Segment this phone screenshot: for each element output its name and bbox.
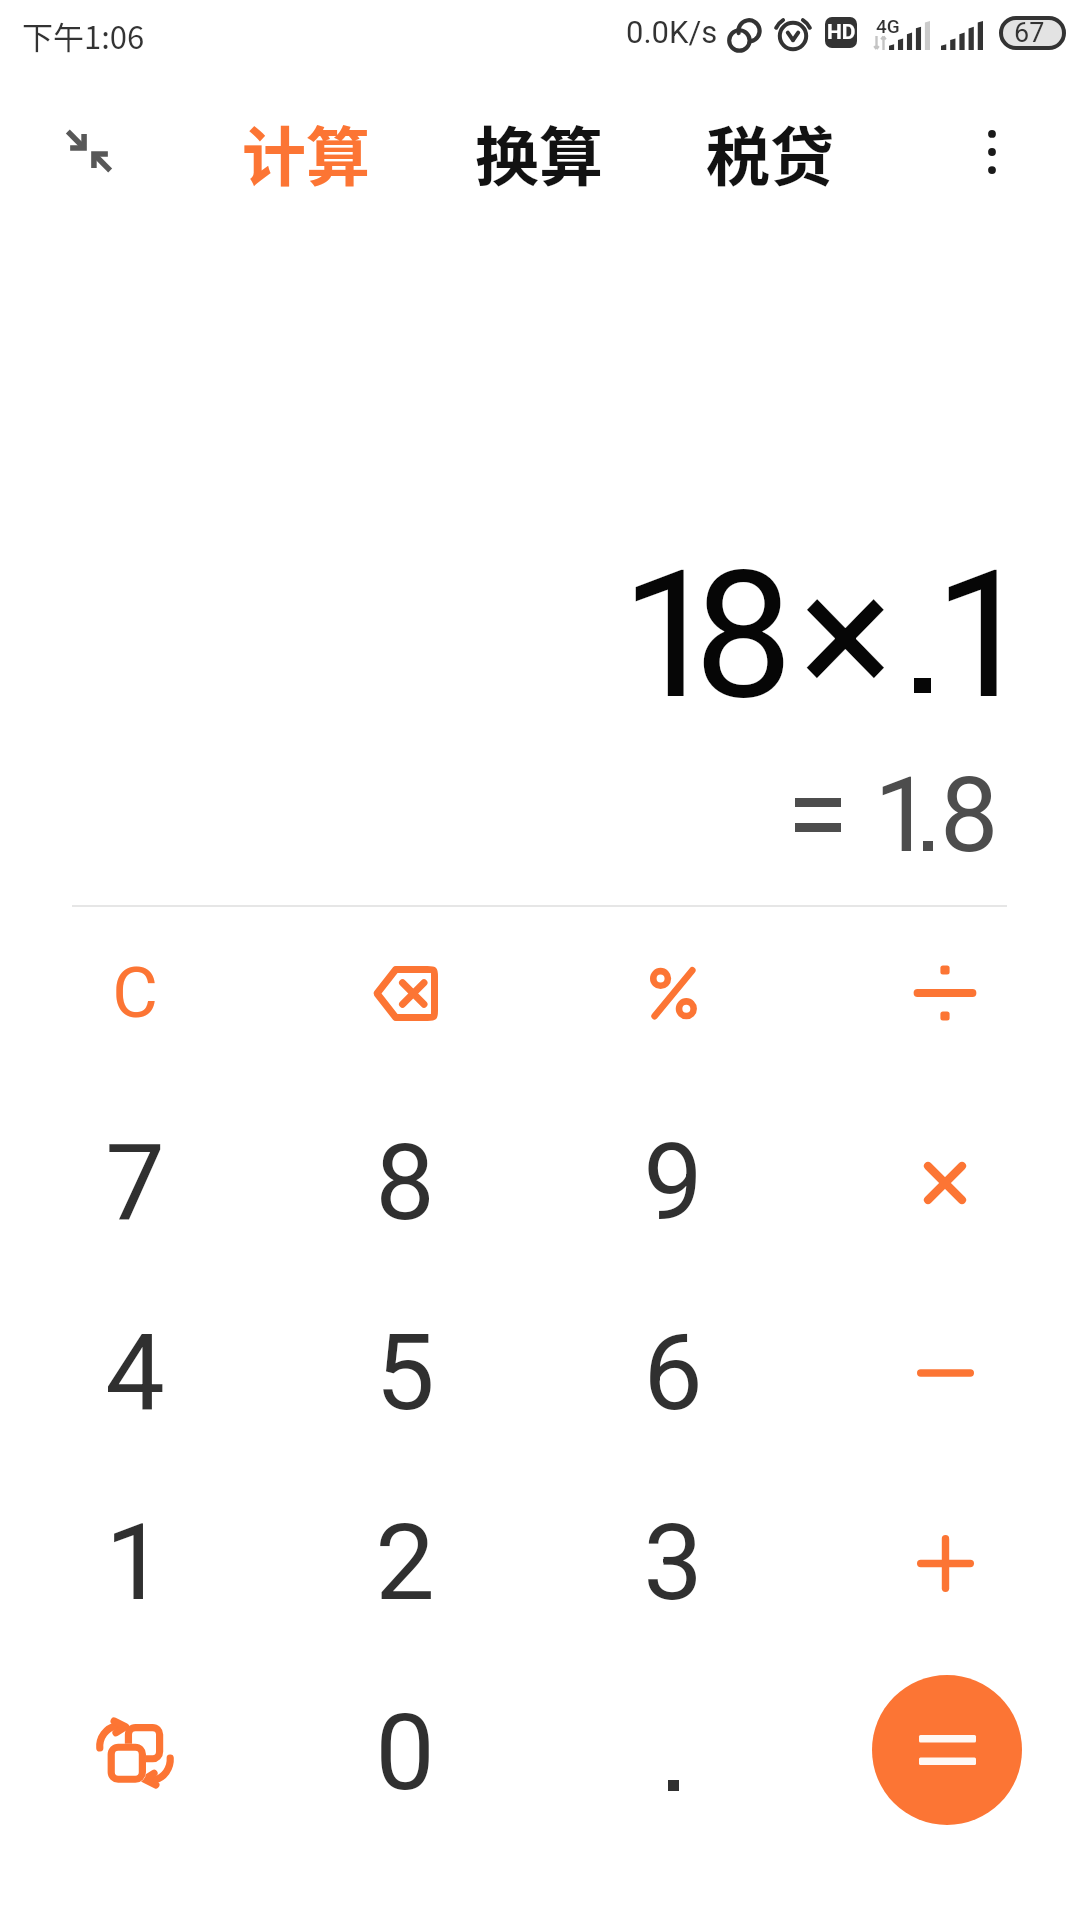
button[interactable]: Multiply bbox=[811, 1088, 1079, 1278]
button[interactable]: 7 bbox=[1, 1088, 269, 1278]
button[interactable]: 税贷 bbox=[686, 106, 854, 196]
button[interactable]: 计算 bbox=[222, 106, 390, 196]
staticText: 换算 bbox=[475, 106, 603, 196]
button[interactable]: 换算 bbox=[455, 106, 623, 196]
button[interactable]: More options bbox=[947, 107, 1037, 197]
staticText: 1 bbox=[934, 533, 1033, 739]
button[interactable]: Collapse bbox=[45, 107, 133, 195]
staticText: C bbox=[112, 952, 158, 1034]
button[interactable]: Minus bbox=[811, 1278, 1079, 1468]
staticText: 0 bbox=[375, 1691, 435, 1815]
button[interactable]: 5 bbox=[271, 1278, 539, 1468]
button[interactable]: 4 bbox=[1, 1278, 269, 1468]
staticText: 8 bbox=[375, 1121, 435, 1245]
staticText: 1 bbox=[105, 1501, 165, 1625]
staticText: 3 bbox=[643, 1501, 703, 1625]
staticText: 计算 bbox=[242, 106, 370, 196]
staticText: HD bbox=[827, 20, 856, 45]
staticText: 6 bbox=[643, 1311, 703, 1435]
staticText: 下午1:06 bbox=[22, 13, 145, 58]
button[interactable]: 6 bbox=[539, 1278, 807, 1468]
button[interactable]: 2 bbox=[271, 1468, 539, 1658]
button[interactable]: C bbox=[1, 898, 269, 1088]
button[interactable]: 1 bbox=[1, 1468, 269, 1658]
button[interactable]: 3 bbox=[539, 1468, 807, 1658]
staticText: 4 bbox=[105, 1311, 165, 1435]
staticText: 1 bbox=[874, 755, 933, 877]
staticText: 5 bbox=[375, 1311, 435, 1435]
staticText: 67 bbox=[1014, 17, 1045, 49]
button[interactable]: Unit convert bbox=[1, 1658, 269, 1848]
button[interactable]: 8 bbox=[271, 1088, 539, 1278]
staticText: 2 bbox=[375, 1501, 435, 1625]
button[interactable]: Equals bbox=[872, 1675, 1022, 1825]
button[interactable]: Percent bbox=[539, 898, 807, 1088]
button[interactable]: Decimal point bbox=[539, 1658, 807, 1848]
button[interactable]: Calculation display: 18 x .1 = 1.8 bbox=[0, 0, 1080, 907]
staticText: 8 bbox=[694, 533, 793, 739]
staticText: 0.0K/s bbox=[626, 14, 718, 50]
button[interactable]: 9 bbox=[539, 1088, 807, 1278]
button[interactable]: 0 bbox=[271, 1658, 539, 1848]
staticText: 4G bbox=[876, 15, 900, 37]
button[interactable]: Backspace bbox=[271, 898, 539, 1088]
button[interactable]: Plus bbox=[811, 1468, 1079, 1658]
staticText: 8 bbox=[940, 755, 999, 877]
staticText: 税贷 bbox=[706, 106, 834, 196]
button[interactable]: Divide bbox=[811, 898, 1079, 1088]
staticText: × bbox=[799, 533, 893, 739]
staticText: 9 bbox=[643, 1121, 703, 1245]
staticText: 7 bbox=[105, 1121, 165, 1245]
staticText: 1 bbox=[621, 533, 720, 739]
